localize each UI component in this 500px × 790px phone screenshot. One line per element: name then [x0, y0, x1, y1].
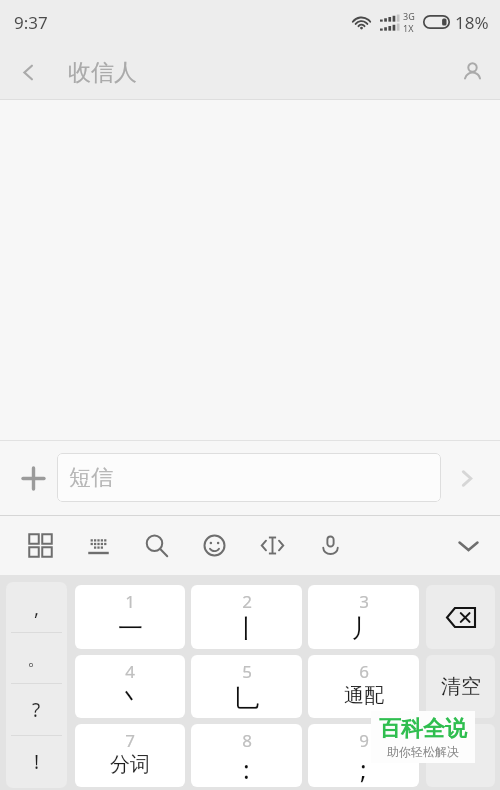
button[interactable]: 4 [75, 655, 185, 718]
button[interactable]: Back [0, 44, 56, 100]
staticText: ? [32, 697, 41, 723]
button[interactable]: Move cursor [252, 525, 292, 565]
staticText: 短信 [69, 464, 113, 492]
staticText: 3 [359, 590, 369, 613]
button[interactable]: Choose contact [444, 44, 500, 100]
staticText: 18% [455, 11, 489, 34]
staticText: 4 [125, 660, 135, 683]
staticText: 丿 [351, 613, 376, 644]
staticText: 8 [242, 729, 252, 752]
staticText: 助你轻松解决 [387, 744, 459, 759]
staticText: 1X [403, 22, 414, 34]
staticText: 2 [242, 590, 252, 613]
staticText: 收信人 [68, 58, 137, 87]
button[interactable]: ! [6, 736, 67, 788]
staticText: 通配 [344, 683, 384, 708]
staticText: 5 [242, 660, 252, 683]
staticText: 3G [403, 10, 415, 22]
staticText: 1 [125, 590, 135, 613]
button[interactable]: U key [426, 724, 495, 787]
staticText: 清空 [441, 674, 481, 699]
staticText: 7 [125, 729, 135, 752]
button[interactable]: 5 [191, 655, 302, 718]
staticText: 丶 [118, 683, 143, 714]
button[interactable]: 7 [75, 724, 185, 787]
staticText: 一 [118, 613, 143, 644]
button[interactable]: Add attachment [9, 454, 57, 502]
staticText: 乚 [234, 683, 259, 714]
button[interactable]: 9 [308, 724, 419, 787]
staticText: 丨 [234, 613, 259, 644]
button[interactable]: Backspace [426, 585, 495, 649]
button[interactable]: 8 [191, 724, 302, 787]
staticText: 。 [27, 647, 46, 671]
button[interactable]: Hide keyboard [448, 525, 488, 565]
button[interactable]: 3 [308, 585, 419, 649]
button[interactable]: Send [441, 453, 491, 503]
button[interactable]: , [6, 582, 67, 633]
button[interactable]: 6 [308, 655, 419, 718]
button[interactable]: 。 [6, 633, 67, 684]
button[interactable]: 短信 [57, 453, 441, 502]
staticText: 9 [359, 729, 369, 752]
staticText: U [453, 742, 468, 769]
staticText: : [243, 752, 250, 786]
button[interactable]: Search [136, 525, 176, 565]
button[interactable]: Emoji [194, 525, 234, 565]
staticText: , [34, 595, 40, 621]
button[interactable]: Keyboard layouts [20, 525, 60, 565]
button[interactable]: Clear [426, 655, 495, 718]
button[interactable]: 1 [75, 585, 185, 649]
button[interactable]: Voice input [310, 525, 350, 565]
button[interactable]: Keyboard [78, 525, 118, 565]
staticText: ! [34, 749, 40, 775]
staticText: 6 [359, 660, 369, 683]
button[interactable]: 2 [191, 585, 302, 649]
button[interactable]: ? [6, 684, 67, 736]
staticText: 分词 [110, 752, 150, 777]
staticText: 9:37 [14, 11, 48, 34]
staticText: 百科全说 [379, 715, 467, 743]
staticText: ; [360, 752, 367, 786]
